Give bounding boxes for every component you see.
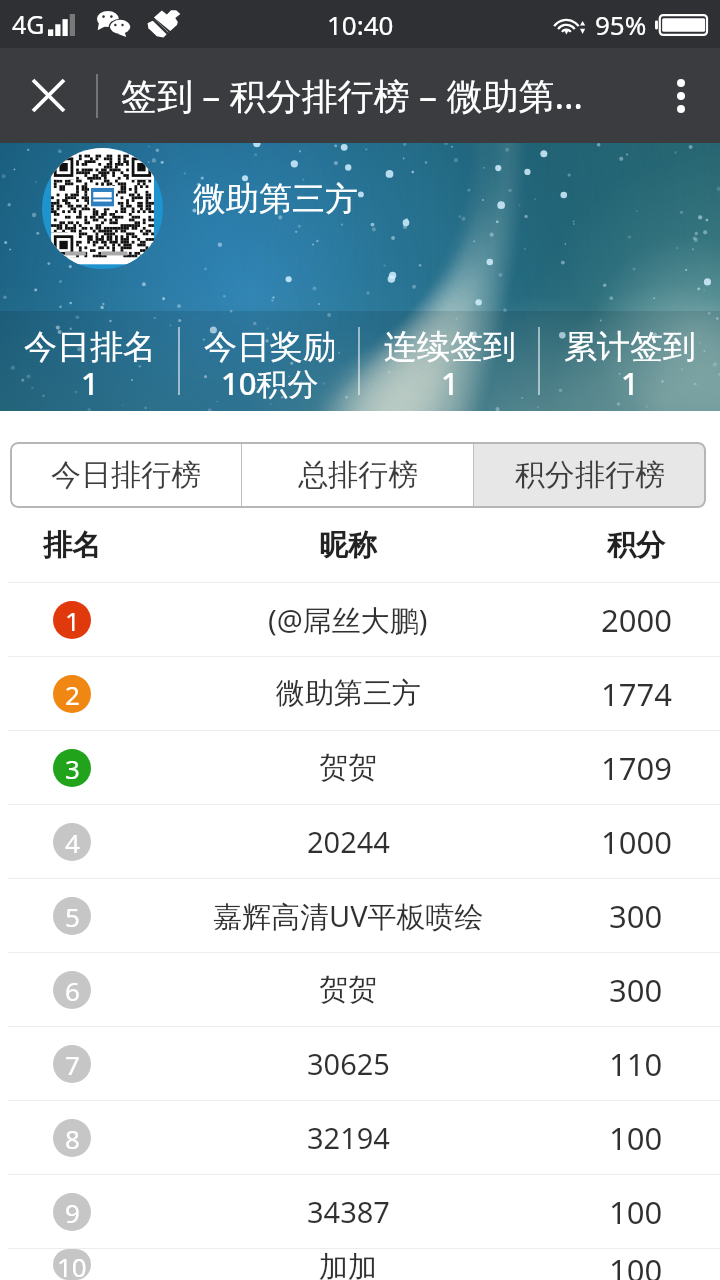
button[interactable]: 总排行榜	[242, 442, 474, 508]
button[interactable]: 5	[0, 879, 720, 952]
button[interactable]: 10	[0, 1249, 720, 1280]
staticText: 3	[65, 751, 80, 786]
staticText: 昵称	[319, 527, 377, 564]
staticText: 20244	[307, 822, 390, 861]
staticText: 95%	[595, 7, 647, 42]
staticText: 1	[81, 362, 99, 404]
staticText: 10	[57, 1249, 87, 1280]
staticText: 110	[609, 1043, 663, 1085]
staticText: 300	[609, 895, 663, 937]
staticText: 连续签到	[384, 326, 516, 368]
button[interactable]: 今日排行榜	[10, 442, 242, 508]
button[interactable]: Close	[0, 48, 96, 143]
staticText: 8	[65, 1121, 80, 1156]
staticText: 签到 – 积分排行榜 – 微助第…	[121, 71, 583, 120]
button[interactable]: 7	[0, 1027, 720, 1100]
staticText: 34387	[307, 1192, 390, 1231]
staticText: 今日奖励	[204, 326, 336, 368]
button[interactable]: 2	[0, 657, 720, 730]
staticText: 30625	[307, 1044, 390, 1083]
staticText: 10:40	[327, 7, 394, 42]
staticText: 贺贺	[319, 749, 377, 786]
staticText: 积分	[607, 527, 665, 564]
staticText: (@屌丝大鹏)	[268, 600, 428, 640]
staticText: 4G	[12, 7, 45, 41]
staticText: 微助第三方	[193, 178, 358, 220]
staticText: 4	[65, 825, 80, 860]
staticText: 总排行榜	[298, 456, 418, 494]
button[interactable]: 1	[0, 583, 720, 656]
staticText: 100	[609, 1191, 663, 1233]
staticText: 5	[65, 899, 80, 934]
staticText: 10积分	[221, 362, 319, 404]
button[interactable]: 9	[0, 1175, 720, 1248]
staticText: 累计签到	[564, 326, 696, 368]
staticText: 1	[65, 603, 80, 638]
staticText: 2000	[601, 599, 672, 641]
staticText: 今日排名	[24, 326, 156, 368]
staticText: 1000	[601, 821, 672, 863]
button[interactable]: More options	[642, 48, 720, 143]
button[interactable]: 积分排行榜	[474, 442, 706, 508]
staticText: 7	[65, 1047, 80, 1082]
staticText: 微助第三方	[276, 675, 421, 712]
staticText: 1774	[601, 673, 672, 715]
button[interactable]: 4	[0, 805, 720, 878]
staticText: 6	[65, 973, 80, 1008]
staticText: 积分排行榜	[515, 456, 665, 494]
staticText: 加加	[319, 1249, 377, 1280]
staticText: 1709	[601, 747, 672, 789]
staticText: 今日排行榜	[51, 456, 201, 494]
staticText: 1	[441, 362, 459, 404]
staticText: 2	[65, 677, 80, 712]
staticText: 嘉辉高清UV平板喷绘	[213, 896, 484, 936]
staticText: 9	[65, 1195, 80, 1230]
staticText: 100	[609, 1117, 663, 1159]
staticText: 排名	[43, 527, 101, 564]
button[interactable]: 8	[0, 1101, 720, 1174]
staticText: 1	[621, 362, 639, 404]
button[interactable]: 3	[0, 731, 720, 804]
staticText: 100	[609, 1249, 663, 1280]
button[interactable]: 6	[0, 953, 720, 1026]
staticText: 32194	[307, 1118, 390, 1157]
staticText: 贺贺	[319, 971, 377, 1008]
staticText: 300	[609, 969, 663, 1011]
